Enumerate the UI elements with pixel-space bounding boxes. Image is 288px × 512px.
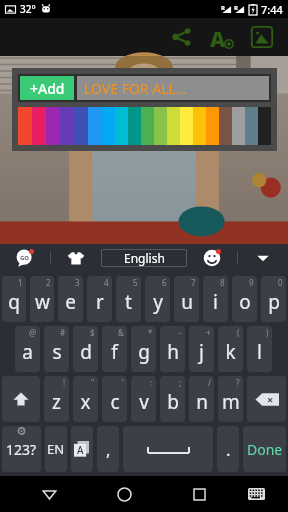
staticText: a xyxy=(22,339,33,365)
staticText: d xyxy=(80,339,92,365)
button[interactable]: Add text xyxy=(202,18,242,56)
button[interactable]: +Add xyxy=(20,76,74,100)
button[interactable]: 7 xyxy=(174,276,199,322)
button[interactable]: Done xyxy=(243,426,286,472)
button[interactable]: 8 xyxy=(203,276,228,322)
staticText: ( xyxy=(237,327,240,338)
button[interactable]: Themes xyxy=(61,244,91,272)
button[interactable]: @ xyxy=(15,326,40,372)
staticText: 123? xyxy=(6,440,37,459)
button[interactable]: Back xyxy=(31,476,67,512)
button[interactable]: 5 xyxy=(116,276,141,322)
staticText: g xyxy=(138,339,150,365)
staticText: & xyxy=(118,327,124,338)
button[interactable]: ! xyxy=(44,376,69,422)
staticText: 7 xyxy=(191,277,196,288)
button[interactable]: Backspace xyxy=(247,376,286,422)
staticText: 2 xyxy=(46,277,51,288)
button[interactable]: Shift xyxy=(2,376,40,422)
button[interactable]: * xyxy=(131,326,156,372)
button[interactable]: & xyxy=(102,326,127,372)
button[interactable]: 6 xyxy=(145,276,170,322)
button[interactable]: # xyxy=(44,326,69,372)
button[interactable]: 0 xyxy=(261,276,286,322)
staticText: w xyxy=(35,289,50,315)
button[interactable]: ( xyxy=(218,326,243,372)
button[interactable]: Emoji xyxy=(197,244,227,272)
staticText: l xyxy=(257,339,262,365)
button[interactable]: LOVE FOR ALL... xyxy=(77,76,269,100)
staticText: f xyxy=(111,339,118,365)
staticText: 5 xyxy=(133,277,138,288)
staticText: j xyxy=(199,339,204,365)
button[interactable]: 9 xyxy=(232,276,257,322)
staticText: $ xyxy=(90,327,95,338)
button[interactable]: Switch keyboard xyxy=(238,476,274,512)
staticText: b xyxy=(167,389,179,415)
button[interactable]: Share xyxy=(162,18,202,56)
button[interactable]: Hide keyboard xyxy=(248,244,278,272)
staticText: A xyxy=(77,443,84,457)
button[interactable]: Gallery xyxy=(242,18,282,56)
staticText: × xyxy=(267,392,274,407)
button[interactable]: - xyxy=(160,326,185,372)
button[interactable]: , xyxy=(97,426,119,472)
button[interactable]: English xyxy=(101,249,187,267)
button[interactable]: Input method xyxy=(71,426,93,472)
button[interactable]: Home xyxy=(106,476,142,512)
button[interactable]: Space xyxy=(123,426,213,472)
staticText: English xyxy=(124,250,165,266)
button[interactable]: 4 xyxy=(87,276,112,322)
button[interactable]: " xyxy=(73,376,98,422)
button[interactable]: + xyxy=(189,326,214,372)
staticText: z xyxy=(52,389,61,415)
button[interactable]: $ xyxy=(73,326,98,372)
button[interactable]: 2 xyxy=(30,276,54,322)
staticText: 1 xyxy=(18,277,23,288)
button[interactable]: 123? xyxy=(2,426,41,472)
button[interactable]: EN xyxy=(45,426,67,472)
staticText: ! xyxy=(63,377,66,388)
staticText: k xyxy=(225,339,236,365)
staticText: - xyxy=(179,327,182,338)
button[interactable]: ? xyxy=(218,376,243,422)
staticText: m xyxy=(222,389,240,415)
staticText: 8 xyxy=(220,277,225,288)
button[interactable]: ; xyxy=(160,376,185,422)
button[interactable]: Recents xyxy=(181,476,217,512)
button[interactable]: 3 xyxy=(58,276,83,322)
staticText: 32° xyxy=(20,2,36,16)
staticText: EN xyxy=(47,440,65,458)
button[interactable]: ) xyxy=(247,326,272,372)
staticText: : xyxy=(150,377,153,388)
button[interactable]: : xyxy=(131,376,156,422)
button[interactable]: / xyxy=(189,376,214,422)
staticText: # xyxy=(60,327,66,338)
button[interactable]: ' xyxy=(102,376,127,422)
staticText: ' xyxy=(122,377,124,388)
button[interactable]: 1 xyxy=(2,276,26,322)
button[interactable]: . xyxy=(217,426,239,472)
button[interactable]: GO Keyboard xyxy=(10,244,40,272)
staticText: A xyxy=(210,25,226,49)
staticText: R xyxy=(221,4,225,12)
